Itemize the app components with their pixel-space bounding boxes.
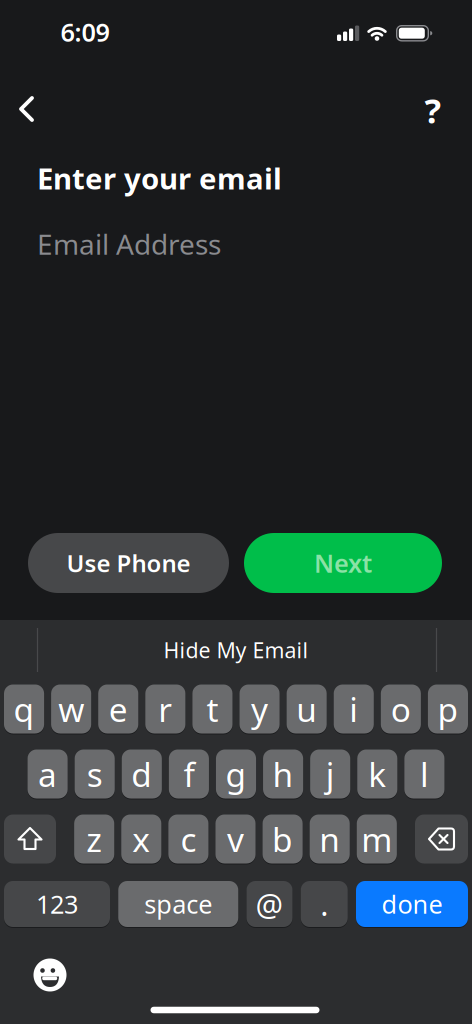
staticText: m: [361, 817, 392, 861]
button[interactable]: r: [145, 683, 185, 734]
button[interactable]: @: [246, 880, 292, 928]
button[interactable]: u: [287, 683, 327, 734]
button[interactable]: y: [239, 683, 280, 734]
button[interactable]: w: [51, 683, 91, 734]
staticText: s: [87, 752, 103, 796]
staticText: v: [227, 817, 244, 861]
button[interactable]: j: [310, 748, 350, 799]
button[interactable]: Next: [244, 533, 442, 593]
button[interactable]: m: [357, 813, 397, 864]
staticText: y: [251, 687, 268, 731]
staticText: z: [86, 817, 102, 861]
staticText: t: [206, 687, 218, 731]
button[interactable]: Hide My Email: [86, 626, 386, 674]
button[interactable]: Email Address: [0, 222, 472, 266]
staticText: d: [131, 752, 152, 796]
button[interactable]: e: [98, 683, 138, 734]
button[interactable]: t: [192, 683, 232, 734]
staticText: ?: [424, 87, 441, 133]
button[interactable]: k: [357, 748, 397, 799]
button[interactable]: space: [118, 880, 238, 928]
staticText: Hide My Email: [163, 636, 308, 664]
staticText: o: [391, 687, 411, 731]
staticText: Use Phone: [66, 547, 190, 579]
button[interactable]: h: [263, 748, 303, 799]
button[interactable]: .: [301, 880, 348, 928]
button[interactable]: o: [381, 683, 421, 734]
staticText: g: [225, 752, 246, 796]
staticText: space: [144, 887, 212, 921]
staticText: n: [319, 817, 340, 861]
button[interactable]: Shift: [4, 814, 56, 863]
staticText: f: [183, 752, 194, 796]
button[interactable]: Delete: [415, 814, 468, 863]
button[interactable]: 123: [4, 880, 110, 928]
button[interactable]: n: [310, 813, 350, 864]
staticText: q: [13, 687, 34, 731]
button[interactable]: d: [122, 748, 162, 799]
button[interactable]: done: [356, 880, 468, 928]
staticText: e: [109, 687, 128, 731]
button[interactable]: p: [428, 683, 468, 734]
staticText: a: [38, 752, 57, 796]
button[interactable]: Emoji: [32, 957, 68, 993]
staticText: p: [437, 687, 458, 731]
staticText: h: [273, 752, 294, 796]
button[interactable]: s: [75, 748, 115, 799]
button[interactable]: i: [334, 683, 374, 734]
staticText: r: [158, 687, 172, 731]
staticText: .: [320, 884, 328, 924]
button[interactable]: Use Phone: [28, 533, 229, 593]
button[interactable]: v: [215, 813, 256, 864]
staticText: 6:09: [60, 15, 109, 49]
button[interactable]: a: [27, 748, 68, 799]
button[interactable]: x: [121, 813, 161, 864]
staticText: u: [296, 687, 317, 731]
staticText: i: [349, 687, 358, 731]
staticText: Enter your email: [37, 158, 282, 197]
staticText: @: [255, 884, 283, 924]
button[interactable]: z: [74, 813, 114, 864]
staticText: c: [180, 817, 196, 861]
staticText: w: [58, 687, 84, 731]
button[interactable]: l: [404, 748, 444, 799]
button[interactable]: Back: [17, 95, 37, 123]
staticText: k: [368, 752, 386, 796]
button[interactable]: b: [263, 813, 303, 864]
button[interactable]: Help: [415, 92, 451, 128]
staticText: l: [420, 752, 429, 796]
staticText: 123: [36, 887, 78, 921]
staticText: b: [272, 817, 293, 861]
staticText: j: [326, 752, 335, 796]
button[interactable]: q: [4, 683, 44, 734]
button[interactable]: c: [168, 813, 208, 864]
staticText: Next: [314, 546, 372, 580]
button[interactable]: f: [169, 748, 209, 799]
staticText: x: [132, 817, 150, 861]
staticText: done: [381, 887, 442, 921]
staticText: Email Address: [37, 225, 221, 263]
button[interactable]: g: [216, 748, 256, 799]
